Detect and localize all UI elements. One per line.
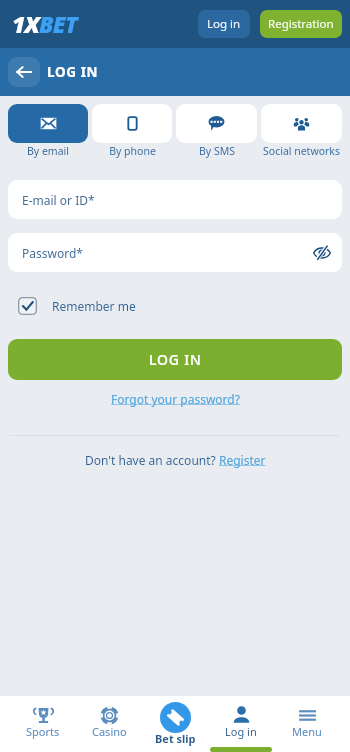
staticText: Don't have an account? [85,452,219,468]
staticText: BET [39,8,77,39]
staticText: Password* [22,245,83,261]
button[interactable]: E-mail or ID* [8,180,342,219]
staticText: E-mail or ID* [22,192,95,208]
button[interactable]: Bet slip [142,696,208,752]
button[interactable]: Log in [198,10,250,38]
staticText: Sports [26,724,60,739]
button[interactable]: Back [8,57,40,87]
staticText: Log in [225,724,257,739]
button[interactable]: By SMS [176,104,257,158]
staticText: Bet slip [155,731,196,746]
staticText: By email [27,144,69,158]
button[interactable]: Remember me [18,297,136,315]
staticText: 1X [12,8,39,39]
button[interactable]: Social networks [261,104,342,158]
staticText: Menu [292,724,322,739]
staticText: By SMS [199,144,235,158]
staticText: Log in [207,16,241,32]
button[interactable]: Password* [8,233,342,272]
button[interactable]: Menu [274,696,340,752]
button[interactable]: Log in [208,696,274,752]
button[interactable]: By email [8,104,88,158]
button[interactable]: Sports [10,696,76,752]
button[interactable]: By phone [92,104,172,158]
staticText: Registration [268,16,334,32]
button[interactable]: LOG IN [8,339,342,380]
staticText: Social networks [263,144,340,158]
staticText: Casino [92,724,127,739]
staticText: LOG IN [149,350,202,369]
button[interactable]: Forgot your password? [111,391,240,407]
staticText: By phone [109,144,156,158]
button[interactable]: Show password [311,242,333,264]
button[interactable]: Registration [260,10,342,38]
staticText: LOG IN [47,63,99,81]
button[interactable]: Don't have an account? [0,452,350,468]
button[interactable]: Casino [76,696,142,752]
staticText: Remember me [52,298,136,314]
staticText: Register [219,452,266,468]
